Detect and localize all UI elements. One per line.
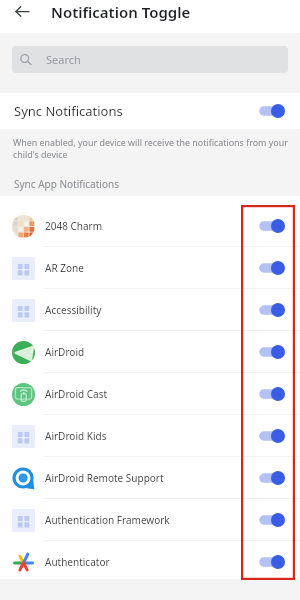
button[interactable]: Toggle [258, 343, 285, 361]
staticText: AirDroid Cast [45, 387, 258, 401]
button[interactable]: Sync Notifications [0, 93, 300, 129]
button[interactable]: AR Zone [0, 247, 300, 289]
button[interactable]: AirDroid Remote Support [0, 457, 300, 499]
button[interactable]: Toggle [258, 385, 285, 403]
button[interactable]: Toggle [258, 259, 285, 277]
button[interactable]: Authenticator [0, 541, 300, 583]
button[interactable]: Back [10, 0, 33, 23]
staticText: Accessibility [45, 303, 258, 317]
staticText: Notification Toggle [51, 2, 191, 22]
staticText: AirDroid [45, 345, 258, 359]
button[interactable]: Toggle [258, 301, 285, 319]
staticText: Authentication Framework [45, 513, 258, 527]
button[interactable]: Toggle [258, 469, 285, 487]
button[interactable]: Search [12, 46, 288, 73]
button[interactable]: Authentication Framework [0, 499, 300, 541]
button[interactable]: Toggle [258, 102, 285, 120]
button[interactable]: AirDroid Kids [0, 415, 300, 457]
button[interactable]: AirDroid Cast [0, 373, 300, 415]
button[interactable]: Toggle [258, 553, 285, 571]
staticText: Sync App Notifications [14, 177, 119, 191]
staticText: 2048 Charm [45, 219, 258, 233]
button[interactable]: AirDroid [0, 331, 300, 373]
button[interactable]: Toggle [258, 217, 285, 235]
button[interactable]: Accessibility [0, 289, 300, 331]
button[interactable]: Toggle [258, 427, 285, 445]
staticText: AR Zone [45, 261, 258, 275]
staticText: Search [46, 52, 81, 67]
staticText: AirDroid Kids [45, 429, 258, 443]
button[interactable]: Toggle [258, 511, 285, 529]
staticText: When enabled, your device will receive t… [13, 136, 293, 161]
staticText: Authenticator [45, 555, 258, 569]
staticText: AirDroid Remote Support [45, 471, 258, 485]
staticText: Sync Notifications [14, 102, 258, 120]
button[interactable]: 2048 Charm [0, 205, 300, 247]
